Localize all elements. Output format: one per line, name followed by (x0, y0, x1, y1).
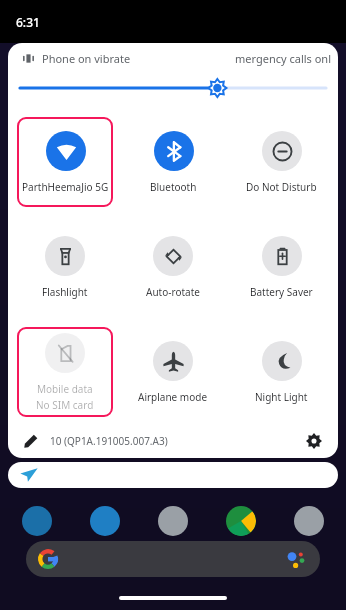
button[interactable]: Do Not Disturb (230, 115, 332, 209)
button[interactable]: Brightness (20, 73, 326, 103)
button[interactable]: Auto-rotate (122, 220, 224, 314)
staticText: Flashlight (42, 285, 88, 299)
staticText: Mobile data (37, 382, 93, 396)
staticText: Auto-rotate (146, 285, 200, 299)
other: Telegram notification (20, 466, 38, 484)
button[interactable]: Edit tiles (22, 432, 40, 450)
button[interactable]: Battery Saver (230, 220, 332, 314)
button[interactable]: Google Search (26, 541, 320, 577)
button[interactable]: Telegram notification (8, 462, 338, 488)
staticText: 10 (QP1A.191005.007.A3) (50, 434, 168, 448)
staticText: Phone on vibrate (42, 51, 131, 66)
button[interactable] (90, 506, 120, 536)
staticText: Night Light (255, 390, 308, 404)
other: Google Search (38, 549, 58, 569)
staticText: Battery Saver (250, 285, 313, 299)
button[interactable] (226, 506, 256, 536)
button[interactable]: Airplane mode (122, 325, 224, 419)
button[interactable] (294, 506, 324, 536)
button[interactable]: Settings (304, 431, 324, 451)
staticText: No SIM card (36, 398, 94, 412)
button[interactable]: Night Light (230, 325, 332, 419)
button[interactable]: Bluetooth (122, 115, 224, 209)
staticText: Do Not Disturb (246, 180, 317, 194)
button[interactable]: ParthHeemaJio 5G (17, 117, 113, 207)
staticText: ParthHeemaJio 5G (22, 180, 109, 194)
other: Ringer vibrate (22, 52, 35, 65)
staticText: mergency calls onl (235, 51, 331, 66)
button[interactable]: Flashlight (14, 220, 116, 314)
staticText: Airplane mode (138, 390, 208, 404)
button[interactable] (158, 506, 188, 536)
other: Google Assistant (286, 549, 306, 569)
button[interactable] (22, 506, 52, 536)
button[interactable]: Mobile data (17, 327, 113, 417)
staticText: Bluetooth (150, 180, 197, 194)
staticText: 6:31 (16, 14, 40, 30)
